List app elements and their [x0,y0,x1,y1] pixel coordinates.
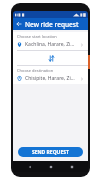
button[interactable]: Kachlina, Harare, Zimbabwe [13,39,88,50]
button[interactable]: Back [25,162,34,171]
staticText: SEND REQUEST [32,149,69,156]
button[interactable]: Recent apps [67,162,76,171]
button[interactable]: Swap locations [46,53,56,63]
staticText: Choose destination [17,68,54,73]
staticText: Kachlina, Harare, Zimbabwe [25,41,78,48]
button[interactable]: Back [13,18,25,30]
button[interactable]: Home [46,162,55,171]
staticText: New ride request [25,20,79,29]
staticText: Choose start location [17,34,57,39]
button[interactable]: SEND REQUEST [18,147,83,157]
staticText: Chisipite, Harare, Zimbabwe [25,75,78,82]
button[interactable]: Chisipite, Harare, Zimbabwe [13,73,88,84]
